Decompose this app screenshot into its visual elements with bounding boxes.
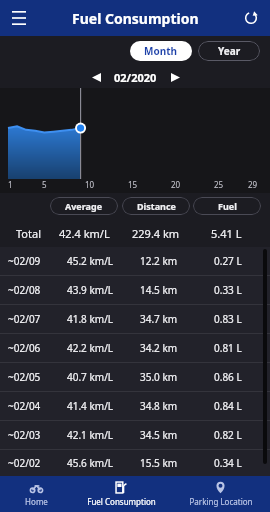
- staticText: Parking Location: [189, 496, 253, 507]
- staticText: 10: [85, 179, 95, 190]
- staticText: 42.2 km/L: [67, 341, 114, 355]
- staticText: Year: [218, 44, 241, 58]
- staticText: 0.33 L: [214, 283, 242, 297]
- staticText: 0.81 L: [214, 341, 242, 355]
- button[interactable]: Distance: [122, 197, 190, 215]
- staticText: 0.83 L: [214, 312, 242, 326]
- staticText: 15: [128, 179, 138, 190]
- staticText: 34.2 km: [140, 341, 178, 355]
- staticText: ~02/03: [8, 428, 41, 442]
- button[interactable]: Refresh: [238, 5, 264, 31]
- staticText: 35.0 km: [140, 370, 178, 384]
- button[interactable]: Next month: [167, 69, 183, 85]
- button[interactable]: Year: [198, 41, 260, 61]
- staticText: 0.27 L: [214, 254, 242, 268]
- staticText: 5.41 L: [211, 226, 242, 241]
- staticText: Distance: [137, 200, 176, 212]
- staticText: 0.86 L: [214, 370, 242, 384]
- staticText: 20: [171, 179, 181, 190]
- staticText: 42.4 km/L: [59, 226, 110, 241]
- button[interactable]: ~02/05: [8, 363, 262, 391]
- staticText: ~02/06: [8, 341, 41, 355]
- button[interactable]: ~02/02: [8, 450, 262, 476]
- staticText: 45.6 km/L: [67, 456, 114, 470]
- button[interactable]: ~02/03: [8, 421, 262, 449]
- staticText: 14.5 km: [140, 283, 178, 297]
- button[interactable]: Month: [130, 41, 192, 61]
- button[interactable]: ~02/08: [8, 276, 262, 304]
- staticText: Average: [65, 200, 103, 212]
- staticText: 34.8 km: [140, 399, 178, 413]
- staticText: 42.1 km/L: [67, 428, 114, 442]
- staticText: Fuel: [218, 200, 237, 212]
- staticText: Home: [25, 496, 48, 507]
- staticText: 15.5 km: [140, 456, 178, 470]
- staticText: ~02/05: [8, 370, 41, 384]
- staticText: ~02/04: [8, 399, 41, 413]
- staticText: Fuel Consumption: [87, 496, 156, 507]
- staticText: ~02/02: [8, 456, 41, 470]
- button[interactable]: ~02/07: [8, 305, 262, 333]
- staticText: 41.8 km/L: [67, 312, 114, 326]
- staticText: 41.4 km/L: [67, 399, 114, 413]
- staticText: ~02/07: [8, 312, 41, 326]
- button[interactable]: ~02/04: [8, 392, 262, 420]
- staticText: 34.7 km: [140, 312, 178, 326]
- staticText: ~02/09: [8, 254, 41, 268]
- staticText: Fuel Consumption: [72, 9, 199, 28]
- staticText: 40.7 km/L: [67, 370, 114, 384]
- button[interactable]: ~02/06: [8, 334, 262, 362]
- staticText: 0.34 L: [214, 456, 242, 470]
- button[interactable]: Fuel Consumption: [72, 476, 171, 512]
- button[interactable]: Fuel: [193, 197, 261, 215]
- staticText: 43.9 km/L: [67, 283, 114, 297]
- staticText: 25: [214, 179, 224, 190]
- staticText: 5: [42, 179, 47, 190]
- staticText: 34.5 km: [140, 428, 178, 442]
- button[interactable]: Parking Location: [171, 476, 270, 512]
- staticText: 1: [8, 179, 13, 190]
- staticText: Total: [16, 226, 41, 241]
- staticText: ~02/08: [8, 283, 41, 297]
- staticText: 02/2020: [114, 70, 157, 85]
- staticText: Month: [144, 44, 178, 58]
- button[interactable]: Home: [0, 476, 72, 512]
- staticText: 12.2 km: [140, 254, 178, 268]
- staticText: 229.4 km: [132, 226, 180, 241]
- button[interactable]: Previous month: [88, 69, 104, 85]
- button[interactable]: Menu: [6, 5, 32, 31]
- button[interactable]: Average: [50, 197, 118, 215]
- staticText: 0.84 L: [214, 399, 242, 413]
- staticText: 0.82 L: [214, 428, 242, 442]
- staticText: 29: [248, 179, 258, 190]
- staticText: 45.2 km/L: [67, 254, 114, 268]
- button[interactable]: ~02/09: [8, 247, 262, 275]
